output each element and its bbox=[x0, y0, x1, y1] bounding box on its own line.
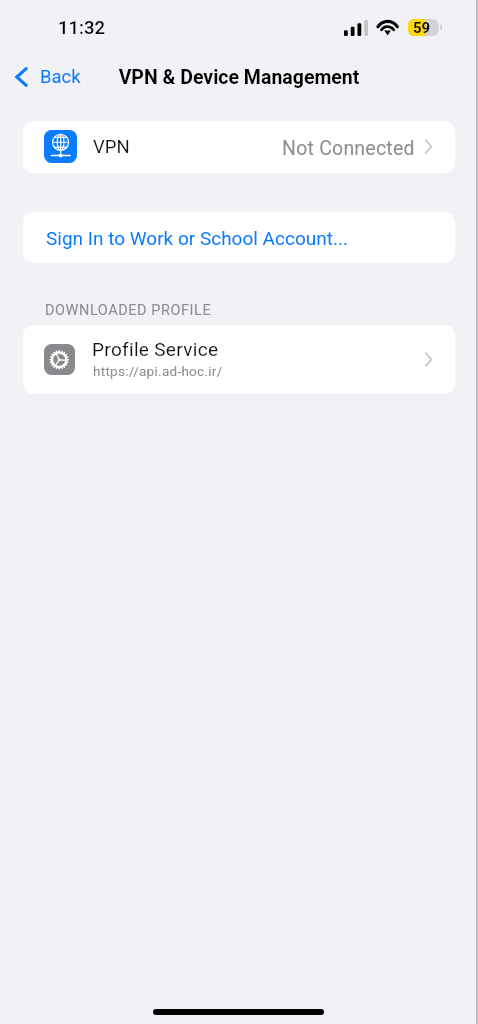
staticText: 59 bbox=[413, 19, 431, 37]
staticText: VPN & Device Management bbox=[0, 66, 478, 89]
button[interactable]: Back bbox=[10, 62, 86, 92]
staticText: https://api.ad-hoc.ir/ bbox=[93, 363, 223, 379]
staticText: Profile Service bbox=[92, 338, 219, 360]
staticText: VPN bbox=[93, 136, 130, 158]
button[interactable]: Profile Service bbox=[23, 325, 455, 394]
staticText: Sign In to Work or School Account... bbox=[46, 227, 348, 249]
button[interactable]: Sign In to Work or School Account... bbox=[23, 212, 455, 263]
staticText: Back bbox=[40, 66, 81, 88]
button[interactable]: VPN bbox=[23, 121, 455, 173]
staticText: DOWNLOADED PROFILE bbox=[45, 302, 212, 319]
staticText: 11:32 bbox=[58, 17, 105, 39]
staticText: Not Connected bbox=[282, 137, 415, 160]
